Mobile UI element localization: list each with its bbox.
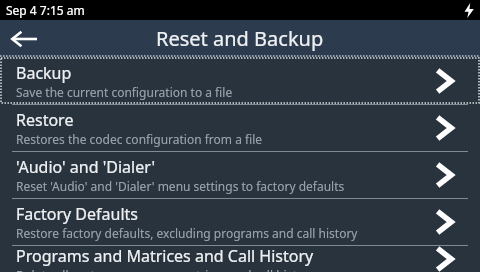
button[interactable]: Back [0,20,48,57]
staticText: Restores the codec configuration from a … [16,131,263,147]
staticText: Save the current configuration to a file [16,84,233,100]
staticText: Sep 4 7:15 am [6,2,85,18]
other: Charging [464,3,474,18]
staticText: Reset 'Audio' and 'Dialer' menu settings… [16,178,345,194]
staticText: Backup [16,62,72,84]
button[interactable]: Programs and Matrices and Call History [0,245,480,272]
button[interactable]: 'Audio' and 'Dialer' [0,151,480,198]
staticText: Reset and Backup [156,25,324,52]
button[interactable]: Backup [0,57,480,104]
staticText: 'Audio' and 'Dialer' [16,156,156,178]
staticText: Factory Defaults [16,203,138,225]
button[interactable]: Restore [0,104,480,151]
staticText: Delete all custom programs, matrices and… [16,267,316,272]
button[interactable]: Factory Defaults [0,198,480,245]
staticText: Programs and Matrices and Call History [16,245,314,267]
staticText: Restore factory defaults, excluding prog… [16,225,358,241]
staticText: Restore [16,109,74,131]
